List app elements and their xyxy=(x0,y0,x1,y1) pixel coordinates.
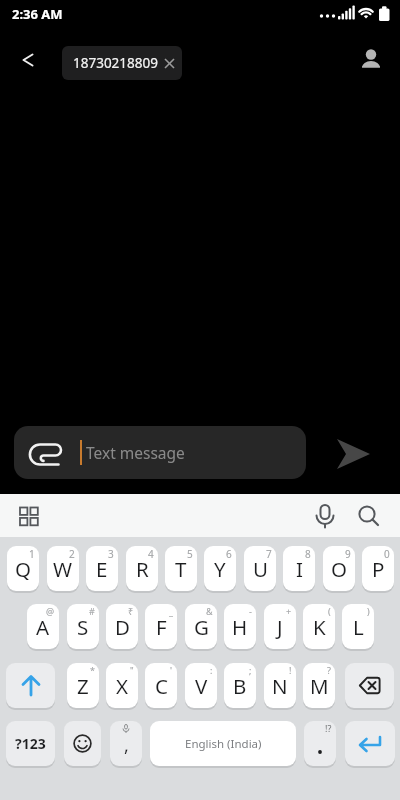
staticText: 2:36 AM xyxy=(12,5,63,23)
button[interactable] xyxy=(308,498,342,532)
button[interactable]: N xyxy=(264,663,296,708)
button[interactable]: E xyxy=(86,546,118,591)
staticText: 6 xyxy=(226,547,232,561)
staticText: + xyxy=(286,605,292,617)
button[interactable]: ?123 xyxy=(6,721,55,766)
staticText: N xyxy=(272,672,288,700)
button[interactable]: W xyxy=(47,546,79,591)
staticText: Text message xyxy=(86,442,185,463)
staticText: G xyxy=(194,613,209,641)
button[interactable] xyxy=(64,721,101,766)
staticText: & xyxy=(206,605,213,617)
staticText: B xyxy=(233,672,247,700)
button[interactable]: U xyxy=(244,546,276,591)
button[interactable]: D xyxy=(106,604,138,649)
staticText: 1 xyxy=(29,547,35,561)
button[interactable]: P xyxy=(362,546,394,591)
staticText: L xyxy=(353,613,364,641)
staticText: @ xyxy=(46,605,55,617)
staticText: ) xyxy=(367,605,370,617)
button[interactable]: English (India) xyxy=(150,721,296,766)
staticText: ' xyxy=(170,664,173,676)
staticText: ?123 xyxy=(15,734,46,753)
staticText: : xyxy=(210,664,213,676)
staticText: T xyxy=(175,555,187,583)
staticText: R xyxy=(136,555,149,583)
staticText: H xyxy=(232,613,248,641)
staticText: 4 xyxy=(148,547,154,561)
button[interactable]: Q xyxy=(7,546,39,591)
button[interactable]: I xyxy=(283,546,315,591)
staticText: D xyxy=(115,613,130,641)
staticText: F xyxy=(156,613,167,641)
staticText: ! xyxy=(289,664,292,676)
staticText: # xyxy=(89,605,95,617)
button[interactable]: 18730218809 xyxy=(62,46,182,80)
button[interactable] xyxy=(352,42,392,82)
staticText: " xyxy=(130,664,134,676)
button[interactable]: M xyxy=(303,663,335,708)
button[interactable]: O xyxy=(323,546,355,591)
staticText: 8 xyxy=(305,547,311,561)
staticText: P xyxy=(372,555,385,583)
staticText: Z xyxy=(77,672,89,700)
button[interactable]: K xyxy=(303,604,335,649)
button[interactable] xyxy=(12,44,46,78)
button[interactable] xyxy=(326,434,380,474)
staticText: 18730218809 xyxy=(73,54,158,72)
button[interactable]: V xyxy=(185,663,217,708)
button[interactable]: J xyxy=(264,604,296,649)
staticText: 3 xyxy=(108,547,114,561)
staticText: 0 xyxy=(384,547,390,561)
staticText: A xyxy=(36,613,50,641)
button[interactable]: A xyxy=(27,604,59,649)
button[interactable]: B xyxy=(224,663,256,708)
button[interactable] xyxy=(345,663,394,708)
staticText: , xyxy=(124,733,129,758)
staticText: Q xyxy=(15,555,32,583)
staticText: ( xyxy=(328,605,331,617)
staticText: K xyxy=(313,613,326,641)
staticText: W xyxy=(53,555,73,583)
staticText: 5 xyxy=(187,547,193,561)
button[interactable]: G xyxy=(185,604,217,649)
staticText: _ xyxy=(169,605,173,617)
button[interactable]: Z xyxy=(67,663,99,708)
staticText: J xyxy=(277,613,283,641)
button[interactable]: S xyxy=(67,604,99,649)
button[interactable]: T xyxy=(165,546,197,591)
button[interactable] xyxy=(6,663,55,708)
staticText: English (India) xyxy=(185,736,262,752)
button[interactable]: C xyxy=(145,663,177,708)
staticText: I xyxy=(296,555,303,583)
button[interactable]: H xyxy=(224,604,256,649)
button[interactable]: Y xyxy=(204,546,236,591)
button[interactable]: R xyxy=(126,546,158,591)
staticText: 9 xyxy=(345,547,351,561)
staticText: 7 xyxy=(266,547,272,561)
staticText: 2 xyxy=(69,547,75,561)
button[interactable]: !? xyxy=(304,721,336,766)
button[interactable] xyxy=(352,498,386,532)
button[interactable]: Text message xyxy=(14,426,306,479)
staticText: U xyxy=(253,555,268,583)
staticText: C xyxy=(155,672,168,700)
button[interactable]: X xyxy=(106,663,138,708)
staticText: ? xyxy=(327,664,331,676)
button[interactable]: F xyxy=(145,604,177,649)
staticText: ₹ xyxy=(128,605,134,617)
staticText: X xyxy=(116,672,129,700)
staticText: !? xyxy=(325,722,332,734)
staticText: E xyxy=(96,555,108,583)
staticText: ; xyxy=(249,664,252,676)
staticText: O xyxy=(331,555,348,583)
button[interactable] xyxy=(345,721,395,766)
staticText: S xyxy=(77,613,89,641)
staticText: Y xyxy=(214,555,226,583)
staticText: V xyxy=(195,672,208,700)
staticText: M xyxy=(310,672,329,700)
staticText: - xyxy=(249,605,252,617)
button[interactable]: , xyxy=(110,721,142,766)
button[interactable]: L xyxy=(342,604,374,649)
button[interactable] xyxy=(12,498,46,532)
